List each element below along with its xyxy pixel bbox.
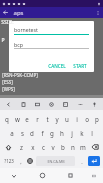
staticText: i bbox=[76, 115, 78, 123]
button[interactable]: Shift bbox=[1, 140, 16, 154]
button[interactable]: s bbox=[17, 126, 27, 140]
button[interactable]: c bbox=[38, 140, 48, 154]
staticText: j bbox=[71, 129, 73, 137]
staticText: t bbox=[46, 115, 49, 123]
staticText: k bbox=[80, 129, 84, 137]
staticText: . bbox=[81, 158, 83, 165]
staticText: z bbox=[20, 143, 23, 151]
staticText: s bbox=[21, 129, 24, 137]
staticText: ?123 bbox=[4, 158, 14, 164]
button[interactable]: j bbox=[67, 126, 77, 140]
button[interactable]: f bbox=[37, 126, 47, 140]
button[interactable]: bcp bbox=[14, 40, 89, 48]
button[interactable]: i bbox=[72, 112, 82, 126]
staticText: l bbox=[91, 129, 93, 137]
button[interactable]: More options bbox=[92, 7, 103, 18]
button[interactable]: , bbox=[16, 154, 25, 168]
button[interactable]: Navigate up bbox=[0, 7, 11, 18]
staticText: SSID: bbox=[1, 19, 14, 26]
staticText: [WPS] bbox=[2, 86, 15, 92]
button[interactable]: l bbox=[87, 126, 97, 140]
staticText: d bbox=[30, 129, 34, 137]
button[interactable]: . bbox=[77, 154, 86, 168]
button[interactable]: Sticker bbox=[60, 99, 71, 110]
button[interactable]: x bbox=[27, 140, 38, 154]
staticText: v bbox=[51, 143, 55, 151]
staticText: bornetest bbox=[14, 26, 38, 33]
staticText: n bbox=[71, 143, 75, 151]
staticText: c bbox=[42, 143, 45, 151]
button[interactable]: Home bbox=[28, 168, 56, 183]
staticText: , bbox=[20, 158, 22, 165]
staticText: h bbox=[60, 129, 64, 137]
button[interactable]: Change language bbox=[25, 154, 34, 168]
button[interactable]: bornetest bbox=[14, 25, 89, 34]
button[interactable]: e bbox=[22, 112, 32, 126]
button[interactable]: m bbox=[78, 140, 88, 154]
button[interactable]: Settings bbox=[46, 99, 57, 110]
staticText: [ESS] bbox=[2, 79, 13, 85]
button[interactable]: v bbox=[48, 140, 58, 154]
staticText: b bbox=[61, 143, 65, 151]
staticText: START bbox=[73, 63, 87, 69]
staticText: u bbox=[65, 115, 69, 123]
button[interactable]: t bbox=[42, 112, 52, 126]
button[interactable]: More bbox=[75, 99, 86, 110]
staticText: CANCEL bbox=[48, 63, 66, 69]
button[interactable]: Switch input method bbox=[84, 168, 103, 183]
button[interactable]: CANCEL bbox=[46, 61, 68, 71]
button[interactable]: r bbox=[32, 112, 42, 126]
button[interactable]: q bbox=[1, 112, 12, 126]
button[interactable]: p bbox=[92, 112, 102, 126]
button[interactable]: Enter bbox=[88, 156, 100, 166]
button[interactable]: k bbox=[77, 126, 87, 140]
button[interactable]: START bbox=[71, 61, 89, 71]
button[interactable]: ?123 bbox=[1, 154, 16, 168]
button[interactable]: Voice input bbox=[89, 99, 100, 110]
button[interactable]: y bbox=[52, 112, 62, 126]
staticText: r bbox=[36, 115, 39, 123]
button[interactable]: d bbox=[27, 126, 37, 140]
staticText: a bbox=[10, 129, 14, 137]
staticText: EN-CA-MB bbox=[47, 159, 65, 164]
staticText: m bbox=[80, 143, 86, 151]
button[interactable]: u bbox=[62, 112, 72, 126]
button[interactable]: z bbox=[16, 140, 27, 154]
button[interactable]: h bbox=[57, 126, 67, 140]
staticText: e bbox=[25, 115, 29, 123]
button[interactable]: w bbox=[12, 112, 22, 126]
staticText: aps bbox=[13, 9, 24, 17]
button[interactable]: Space bbox=[36, 156, 75, 166]
staticText: w bbox=[15, 115, 20, 123]
staticText: bcp bbox=[14, 41, 23, 48]
button[interactable]: Clipboard bbox=[18, 99, 29, 110]
staticText: p bbox=[95, 115, 99, 123]
button[interactable]: Hide keyboard bbox=[0, 168, 28, 183]
staticText: q bbox=[5, 115, 9, 123]
staticText: y bbox=[55, 115, 59, 123]
staticText: o bbox=[85, 115, 89, 123]
button[interactable]: Recents bbox=[56, 168, 84, 183]
staticText: x bbox=[31, 143, 35, 151]
staticText: f bbox=[41, 129, 44, 137]
staticText: g bbox=[50, 129, 54, 137]
button[interactable]: a bbox=[7, 126, 17, 140]
button[interactable]: g bbox=[47, 126, 57, 140]
staticText: P bbox=[1, 37, 5, 44]
button[interactable]: Previous bbox=[3, 99, 14, 110]
button[interactable]: GIF bbox=[32, 99, 43, 110]
button[interactable]: n bbox=[68, 140, 78, 154]
button[interactable]: b bbox=[58, 140, 68, 154]
button[interactable]: Backspace bbox=[88, 140, 102, 154]
button[interactable]: o bbox=[82, 112, 92, 126]
staticText: [RSN-PSK-CCMP] bbox=[2, 72, 38, 78]
